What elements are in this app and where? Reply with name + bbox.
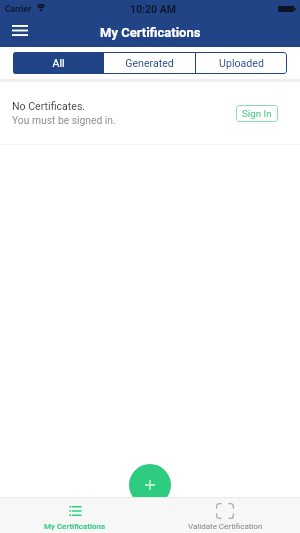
staticText: 10:20 AM: [130, 3, 176, 15]
staticText: No Certificates.: [12, 100, 86, 112]
staticText: Sign In: [242, 108, 272, 119]
button[interactable]: Add certification: [129, 464, 171, 506]
staticText: Carrier: [5, 4, 32, 14]
button[interactable]: Open navigation menu: [3, 19, 37, 41]
button[interactable]: Uploaded: [196, 52, 287, 74]
button[interactable]: All: [13, 52, 103, 74]
button[interactable]: My Certifications: [0, 498, 150, 533]
staticText: All: [52, 57, 65, 69]
staticText: Uploaded: [219, 57, 264, 69]
staticText: You must be signed in.: [12, 114, 116, 126]
button[interactable]: Validate Certification: [150, 498, 300, 533]
staticText: My Certifications: [44, 522, 106, 531]
button[interactable]: Generated: [104, 52, 195, 74]
staticText: Validate Certification: [188, 522, 263, 531]
staticText: Generated: [125, 57, 174, 69]
staticText: My Certifications: [100, 25, 201, 40]
button[interactable]: Sign In: [236, 105, 278, 122]
